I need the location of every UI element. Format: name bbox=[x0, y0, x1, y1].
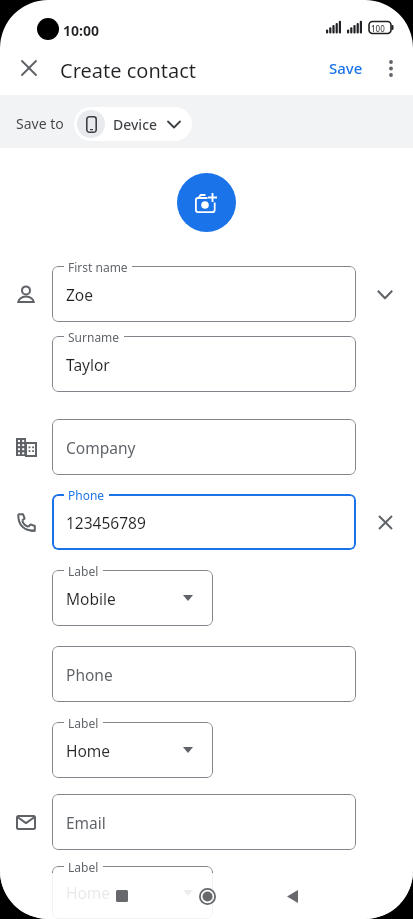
button[interactable] bbox=[177, 173, 236, 232]
staticText: Device bbox=[113, 115, 158, 134]
staticText: Phone bbox=[68, 487, 105, 503]
button[interactable]: Zoe bbox=[52, 266, 356, 322]
staticText: Save to bbox=[16, 114, 64, 133]
button[interactable] bbox=[365, 274, 405, 314]
staticText: Label bbox=[68, 715, 99, 731]
button[interactable] bbox=[177, 873, 237, 919]
staticText: 10:00 bbox=[63, 21, 99, 40]
button[interactable]: Save bbox=[318, 44, 374, 91]
button[interactable]: Mobile bbox=[52, 570, 213, 626]
staticText: Phone bbox=[66, 664, 113, 685]
staticText: Save bbox=[329, 58, 363, 78]
button[interactable]: Company bbox=[52, 419, 356, 475]
staticText: Home bbox=[66, 882, 111, 903]
button[interactable] bbox=[376, 45, 406, 92]
staticText: Label bbox=[68, 859, 99, 875]
button[interactable]: Email bbox=[52, 794, 356, 850]
button[interactable]: 123456789 bbox=[52, 494, 356, 550]
staticText: First name bbox=[68, 259, 128, 275]
button[interactable] bbox=[9, 48, 49, 88]
staticText: Email bbox=[66, 812, 106, 833]
staticText: Company bbox=[66, 437, 136, 458]
button[interactable]: Home bbox=[52, 722, 213, 778]
staticText: 100 bbox=[371, 23, 385, 34]
staticText: Mobile bbox=[66, 588, 116, 609]
button[interactable]: Taylor bbox=[52, 336, 356, 392]
staticText: Zoe bbox=[66, 284, 93, 305]
staticText: Create contact bbox=[60, 57, 197, 84]
button[interactable]: Home bbox=[52, 866, 213, 919]
button[interactable] bbox=[365, 502, 405, 542]
staticText: Home bbox=[66, 740, 111, 761]
button[interactable]: Device bbox=[74, 107, 192, 141]
staticText: Label bbox=[68, 563, 99, 579]
staticText: Taylor bbox=[66, 354, 110, 375]
staticText: 123456789 bbox=[66, 512, 146, 533]
staticText: Surname bbox=[68, 329, 120, 345]
button[interactable]: Phone bbox=[52, 646, 356, 702]
button[interactable] bbox=[262, 873, 322, 919]
button[interactable] bbox=[92, 873, 152, 919]
